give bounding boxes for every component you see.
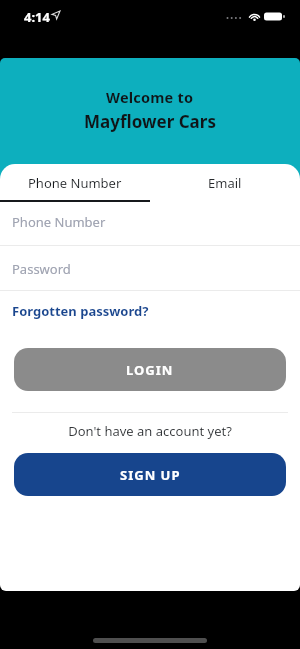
staticText: Phone Number: [12, 213, 106, 231]
staticText: LOGIN: [126, 361, 174, 379]
staticText: Password: [12, 260, 71, 278]
staticText: Don't have an account yet?: [0, 422, 300, 440]
staticText: Welcome to: [106, 87, 194, 107]
staticText: 4:14: [24, 8, 50, 26]
staticText: Email: [208, 174, 242, 192]
staticText: Mayflower Cars: [84, 110, 216, 133]
staticText: Phone Number: [28, 174, 122, 192]
staticText: SIGN UP: [120, 466, 181, 484]
staticText: Forgotten password?: [12, 302, 149, 320]
